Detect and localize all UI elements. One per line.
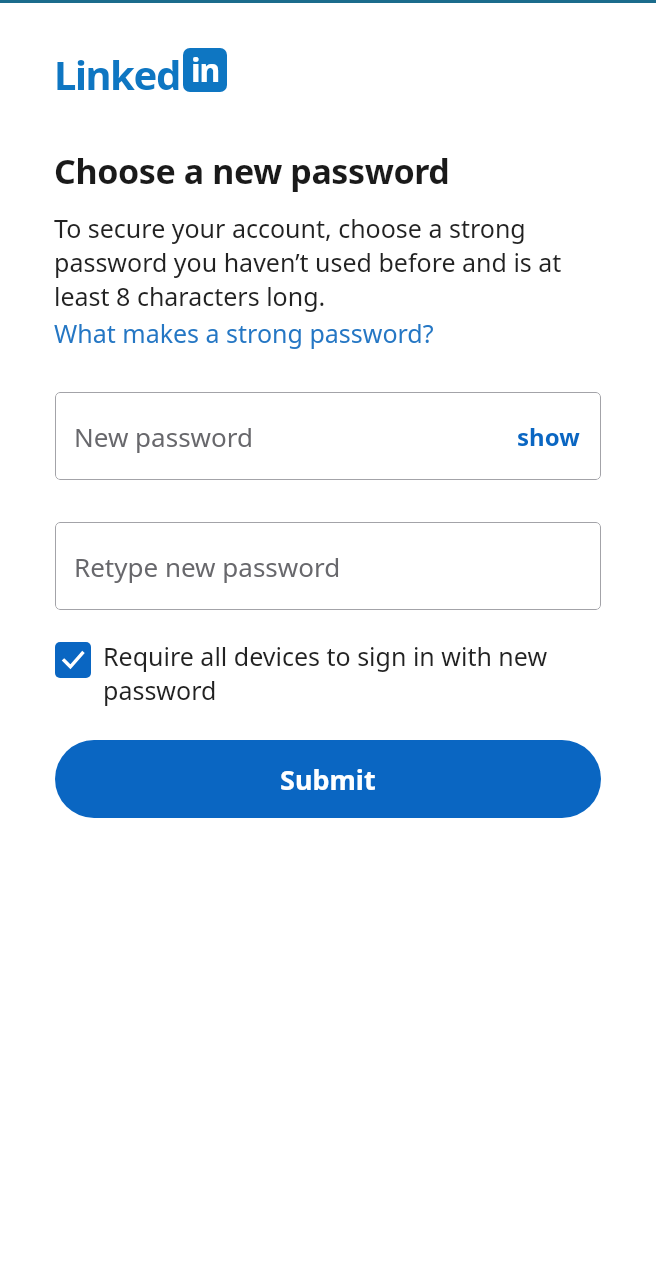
staticText: in: [191, 48, 220, 89]
button[interactable]: Submit: [55, 740, 601, 818]
other: LinkedIn: [54, 47, 227, 93]
button[interactable]: Retype new password: [55, 522, 601, 610]
staticText: To secure your account, choose a strong …: [54, 211, 608, 313]
staticText: Submit: [280, 761, 376, 798]
button[interactable]: New password: [55, 392, 601, 480]
button[interactable]: show: [517, 420, 580, 453]
staticText: Linked: [54, 47, 180, 93]
staticText: Retype new password: [74, 549, 341, 584]
staticText: Require all devices to sign in with new …: [103, 639, 566, 707]
button[interactable]: What makes a strong password?: [54, 316, 434, 350]
button[interactable]: Require all devices to sign in with new …: [55, 639, 566, 707]
staticText: show: [517, 420, 580, 453]
staticText: New password: [74, 419, 517, 454]
staticText: What makes a strong password?: [54, 316, 434, 350]
staticText: Choose a new password: [54, 148, 450, 194]
